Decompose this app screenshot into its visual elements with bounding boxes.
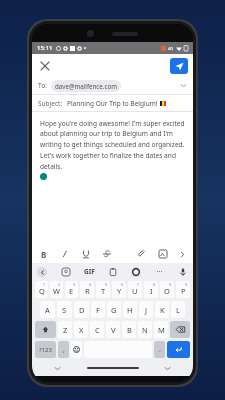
button[interactable]: Italic bbox=[59, 248, 71, 260]
button[interactable]: More formatting bbox=[177, 249, 187, 259]
button[interactable]: 3 bbox=[65, 281, 78, 298]
staticText: Y bbox=[117, 286, 122, 296]
button[interactable]: H bbox=[123, 301, 137, 318]
staticText: L bbox=[176, 305, 180, 315]
button[interactable]: 4 bbox=[80, 281, 94, 298]
button[interactable]: J bbox=[139, 301, 153, 318]
button[interactable]: Backspace bbox=[170, 321, 190, 338]
staticText: I bbox=[150, 286, 153, 296]
staticText: J bbox=[145, 305, 148, 315]
button[interactable]: Stickers bbox=[60, 266, 71, 277]
staticText: Q bbox=[39, 286, 45, 296]
button[interactable]: Subject: bbox=[38, 95, 187, 111]
button[interactable]: B bbox=[122, 321, 136, 338]
button[interactable]: V bbox=[106, 321, 120, 338]
button[interactable]: N bbox=[138, 321, 152, 338]
staticText: W bbox=[53, 286, 60, 296]
staticText: 0 bbox=[185, 282, 188, 287]
staticText: 9 bbox=[169, 282, 172, 287]
staticText: dave@mailfence.com bbox=[55, 82, 117, 90]
button[interactable]: 5 bbox=[96, 281, 110, 298]
staticText: T bbox=[101, 286, 106, 296]
staticText: GIF bbox=[84, 267, 95, 276]
staticText: Hope you're doing awesome! I'm super exc… bbox=[40, 119, 185, 171]
staticText: O bbox=[164, 286, 170, 296]
button[interactable]: Shift bbox=[35, 321, 56, 338]
staticText: D bbox=[79, 305, 85, 315]
button[interactable]: Enter bbox=[167, 341, 190, 358]
button[interactable]: Clipboard bbox=[107, 266, 118, 277]
staticText: , bbox=[63, 345, 65, 355]
staticText: G bbox=[111, 305, 117, 315]
staticText: 15:11 bbox=[37, 44, 53, 52]
staticText: 2 bbox=[58, 282, 61, 287]
staticText: B bbox=[41, 249, 47, 260]
button[interactable]: Insert image bbox=[157, 248, 169, 260]
button[interactable]: Close bbox=[37, 58, 53, 74]
button[interactable]: Hope you're doing awesome! I'm super exc… bbox=[40, 119, 185, 238]
button[interactable]: S bbox=[57, 301, 72, 318]
staticText: Subject: bbox=[38, 99, 63, 108]
button[interactable]: . bbox=[154, 341, 165, 358]
staticText: F bbox=[96, 305, 100, 315]
button[interactable]: Settings bbox=[130, 266, 141, 277]
staticText: U bbox=[132, 286, 138, 296]
staticText: E bbox=[69, 286, 74, 296]
staticText: C bbox=[95, 325, 100, 335]
button[interactable]: 7 bbox=[128, 281, 142, 298]
staticText: V bbox=[111, 325, 116, 335]
staticText: M bbox=[158, 325, 165, 335]
button[interactable]: Back bbox=[37, 267, 47, 277]
staticText: R bbox=[85, 286, 90, 296]
button[interactable]: 2 bbox=[50, 281, 63, 298]
staticText: A bbox=[45, 305, 50, 315]
button[interactable]: Underline bbox=[80, 248, 92, 260]
button[interactable]: X bbox=[74, 321, 88, 338]
staticText: To: bbox=[38, 81, 47, 90]
button[interactable]: A bbox=[40, 301, 55, 318]
button[interactable]: Voice input bbox=[177, 266, 188, 277]
button[interactable]: 6 bbox=[112, 281, 126, 298]
staticText: . bbox=[159, 345, 161, 355]
button[interactable]: F bbox=[91, 301, 105, 318]
button[interactable]: To: bbox=[38, 77, 187, 94]
staticText: Z bbox=[63, 325, 68, 335]
button[interactable]: 8 bbox=[144, 281, 158, 298]
button[interactable]: C bbox=[90, 321, 104, 338]
button[interactable]: 0 bbox=[176, 281, 190, 298]
staticText: ?123 bbox=[39, 346, 52, 354]
staticText: H bbox=[127, 305, 133, 315]
button[interactable]: B bbox=[38, 248, 50, 260]
button[interactable]: M bbox=[154, 321, 168, 338]
staticText: Planning Our Trip to Belgium! bbox=[67, 99, 158, 108]
button[interactable]: D bbox=[74, 301, 89, 318]
button[interactable]: Attach file bbox=[136, 248, 148, 260]
button[interactable]: L bbox=[171, 301, 185, 318]
staticText: 7 bbox=[137, 282, 140, 287]
staticText: 4 bbox=[89, 282, 92, 287]
staticText: 1 bbox=[43, 282, 46, 287]
button[interactable]: Strikethrough bbox=[101, 248, 113, 260]
button[interactable]: 9 bbox=[160, 281, 174, 298]
staticText: 6 bbox=[121, 282, 124, 287]
staticText: X bbox=[79, 325, 84, 335]
staticText: P bbox=[181, 286, 186, 296]
staticText: S bbox=[62, 305, 67, 315]
button[interactable]: 1 bbox=[35, 281, 48, 298]
staticText: 4G bbox=[168, 46, 174, 51]
button[interactable]: K bbox=[155, 301, 169, 318]
staticText: K bbox=[160, 305, 165, 315]
button[interactable]: Emoji bbox=[71, 341, 82, 358]
button[interactable]: ?123 bbox=[35, 341, 56, 358]
button[interactable]: G bbox=[107, 301, 121, 318]
staticText: 3 bbox=[73, 282, 76, 287]
staticText: B bbox=[127, 325, 132, 335]
button[interactable]: Z bbox=[58, 321, 72, 338]
button[interactable]: Send bbox=[170, 58, 188, 74]
button[interactable]: GIF bbox=[84, 267, 95, 276]
staticText: N bbox=[142, 325, 148, 335]
staticText: 5 bbox=[105, 282, 108, 287]
button[interactable]: , bbox=[58, 341, 69, 358]
button[interactable]: More options bbox=[153, 271, 165, 272]
